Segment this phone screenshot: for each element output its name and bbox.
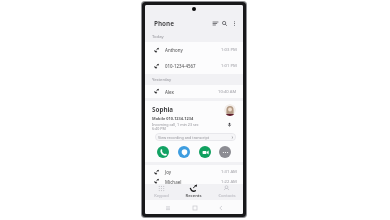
button[interactable]: Video call bbox=[199, 146, 211, 158]
staticText: Yesterday bbox=[152, 77, 172, 83]
button[interactable]: More bbox=[219, 146, 231, 158]
button[interactable]: Home bbox=[190, 203, 199, 212]
button[interactable]: Call bbox=[157, 146, 169, 158]
button[interactable]: Contact photo bbox=[224, 104, 236, 116]
button[interactable]: Keypad bbox=[145, 185, 177, 199]
button[interactable]: Search bbox=[219, 18, 229, 28]
staticText: Joy bbox=[165, 169, 172, 175]
staticText: Incoming call, 1 min 23 sec bbox=[152, 122, 199, 127]
button[interactable]: Michael bbox=[145, 179, 243, 184]
button[interactable]: Recording bbox=[225, 120, 234, 129]
button[interactable]: Recent apps bbox=[163, 203, 172, 212]
staticText: Mobile 010-1234-1234 bbox=[152, 116, 194, 121]
staticText: 1:31 AM bbox=[221, 169, 237, 175]
staticText: 1:22 AM bbox=[221, 179, 237, 184]
staticText: 1:01 PM bbox=[221, 63, 237, 69]
button[interactable]: 010-1234-4567 bbox=[145, 58, 243, 74]
staticText: Michael bbox=[165, 179, 182, 184]
button[interactable]: Message bbox=[178, 146, 190, 158]
button[interactable]: More options bbox=[229, 18, 239, 28]
button[interactable]: Alex bbox=[145, 85, 243, 98]
staticText: Today bbox=[152, 34, 164, 40]
staticText: Keypad bbox=[154, 193, 169, 199]
staticText: Recents bbox=[185, 193, 202, 199]
button[interactable]: Contacts bbox=[210, 185, 243, 199]
button[interactable]: Recents bbox=[177, 185, 210, 199]
button[interactable]: Back bbox=[216, 203, 225, 212]
staticText: Phone bbox=[154, 19, 175, 28]
staticText: 6:40 PM bbox=[152, 126, 166, 131]
staticText: Contacts bbox=[218, 193, 236, 199]
button[interactable]: Sort bbox=[210, 18, 220, 28]
button[interactable]: View recording and transcript bbox=[155, 133, 236, 141]
staticText: Sophia bbox=[152, 105, 174, 114]
button[interactable]: Joy bbox=[145, 165, 243, 179]
staticText: Anthony bbox=[165, 47, 183, 53]
staticText: 10:40 AM bbox=[218, 89, 237, 95]
staticText: Alex bbox=[165, 89, 174, 95]
staticText: 010-1234-4567 bbox=[165, 63, 196, 69]
button[interactable]: Anthony bbox=[145, 42, 243, 58]
staticText: View recording and transcript bbox=[158, 135, 210, 140]
staticText: 1:03 PM bbox=[221, 47, 237, 53]
